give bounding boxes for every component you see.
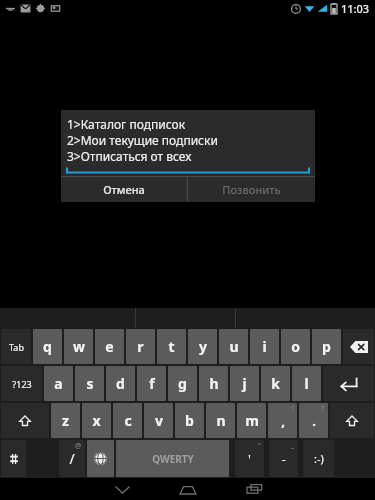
button[interactable]: Keyboard settings — [1, 440, 26, 477]
button[interactable]: Backspace — [343, 329, 374, 364]
button[interactable]: h — [199, 366, 228, 401]
button[interactable]: s — [75, 366, 104, 401]
button[interactable]: d — [106, 366, 135, 401]
staticText: h — [209, 374, 219, 393]
staticText: t — [168, 337, 175, 356]
staticText: ! — [292, 404, 294, 414]
staticText: o — [291, 337, 300, 356]
staticText: n — [216, 411, 226, 430]
button[interactable]: w — [64, 329, 93, 364]
button[interactable]: l — [292, 366, 321, 401]
button[interactable]: , — [268, 403, 297, 438]
button[interactable]: b — [175, 403, 204, 438]
staticText: Позвонить — [222, 182, 281, 197]
button[interactable]: Home — [166, 478, 210, 500]
button[interactable]: Recents — [232, 478, 276, 500]
staticText: z — [62, 411, 69, 430]
staticText: q — [43, 337, 52, 356]
staticText: @ — [75, 441, 82, 451]
button[interactable]: p — [312, 329, 341, 364]
button[interactable]: q — [33, 329, 62, 364]
staticText: , — [281, 412, 285, 430]
button[interactable]: y — [188, 329, 217, 364]
button[interactable]: Back — [100, 478, 144, 500]
staticText: y — [199, 337, 207, 356]
button[interactable]: o — [281, 329, 310, 364]
button[interactable]: f — [137, 366, 166, 401]
button[interactable]: r — [126, 329, 155, 364]
button[interactable]: ' — [235, 440, 264, 477]
staticText: :-) — [314, 451, 324, 466]
staticText: w — [73, 337, 85, 356]
staticText: _ — [291, 441, 295, 451]
staticText: Tab — [9, 341, 24, 353]
button[interactable]: x — [82, 403, 111, 438]
button[interactable]: - — [269, 440, 298, 477]
button[interactable]: Позвонить — [188, 177, 315, 202]
staticText: j — [242, 374, 247, 393]
staticText: x — [92, 411, 101, 430]
button[interactable]: i — [250, 329, 279, 364]
button[interactable]: Tab — [1, 329, 31, 364]
staticText: d — [116, 374, 125, 393]
staticText: " — [258, 441, 261, 451]
button[interactable]: g — [168, 366, 197, 401]
staticText: 11:03 — [341, 1, 370, 16]
button[interactable]: c — [113, 403, 142, 438]
staticText: 3>Отписаться от всех — [67, 148, 192, 164]
staticText: ?123 — [12, 378, 32, 390]
button[interactable]: n — [206, 403, 235, 438]
staticText: a — [54, 374, 63, 393]
staticText: 1>Каталог подписок — [67, 116, 186, 132]
staticText: i — [262, 337, 267, 356]
staticText: Отмена — [103, 182, 145, 197]
button[interactable]: u — [219, 329, 248, 364]
button[interactable]: QWERTY — [116, 440, 229, 477]
staticText: c — [124, 411, 132, 430]
button[interactable]: k — [261, 366, 290, 401]
staticText: g — [178, 374, 187, 393]
button[interactable]: Отмена — [61, 177, 187, 202]
staticText: k — [271, 374, 280, 393]
button[interactable]: a — [44, 366, 73, 401]
staticText: e — [105, 337, 114, 356]
staticText: v — [155, 411, 163, 430]
staticText: ? — [321, 404, 325, 414]
button[interactable]: m — [237, 403, 266, 438]
staticText: b — [185, 411, 194, 430]
staticText: l — [304, 374, 309, 393]
button[interactable]: v — [144, 403, 173, 438]
staticText: ' — [248, 450, 251, 468]
button[interactable]: z — [51, 403, 80, 438]
button[interactable]: ?123 — [1, 366, 42, 401]
staticText: / — [69, 449, 75, 468]
staticText: u — [229, 337, 239, 356]
button[interactable]: . — [299, 403, 328, 438]
staticText: - — [281, 450, 286, 468]
staticText: s — [86, 374, 94, 393]
button[interactable]: Shift — [330, 403, 374, 438]
button[interactable]: j — [230, 366, 259, 401]
button[interactable]: t — [157, 329, 186, 364]
button[interactable]: Enter — [323, 366, 374, 401]
staticText: r — [137, 337, 144, 356]
button[interactable]: Change language — [87, 440, 114, 477]
button[interactable]: e — [95, 329, 124, 364]
button[interactable]: Shift — [1, 403, 49, 438]
staticText: 2>Мои текущие подписки — [67, 132, 218, 148]
button[interactable]: :-) — [303, 440, 334, 477]
button[interactable]: / — [59, 440, 85, 477]
staticText: . — [312, 412, 316, 430]
staticText: p — [322, 337, 331, 356]
staticText: f — [149, 374, 155, 393]
staticText: m — [245, 411, 259, 430]
staticText: QWERTY — [152, 452, 194, 466]
